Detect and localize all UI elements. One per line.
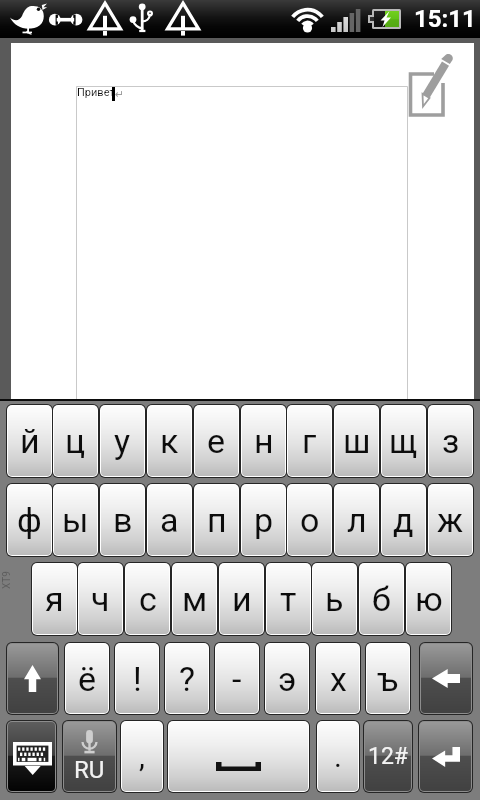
staticText: . xyxy=(334,739,342,774)
button[interactable]: й xyxy=(8,406,51,476)
staticText: ь xyxy=(325,579,344,619)
staticText: ц xyxy=(65,421,86,461)
staticText: я xyxy=(45,579,64,619)
button[interactable]: - xyxy=(216,644,258,713)
button[interactable]: ж xyxy=(429,485,472,555)
button[interactable]: л xyxy=(335,485,378,555)
button[interactable]: Space xyxy=(169,722,308,791)
staticText: к xyxy=(160,421,179,461)
staticText: р xyxy=(254,500,274,540)
button[interactable]: ё xyxy=(66,644,108,713)
button[interactable]: . xyxy=(318,722,358,791)
button[interactable]: ! xyxy=(116,644,158,713)
staticText: ч xyxy=(91,579,110,619)
button[interactable]: Shift xyxy=(8,644,57,713)
button[interactable]: ю xyxy=(407,564,450,634)
button[interactable]: ф xyxy=(8,485,51,555)
staticText: х xyxy=(330,659,347,699)
button[interactable]: в xyxy=(101,485,144,555)
staticText: н xyxy=(254,421,274,461)
button[interactable]: 12# xyxy=(365,722,411,791)
staticText: ш xyxy=(343,421,371,461)
staticText: л xyxy=(347,500,367,540)
staticText: о xyxy=(300,500,320,540)
button[interactable]: м xyxy=(173,564,216,634)
staticText: RU xyxy=(74,756,105,784)
button[interactable]: и xyxy=(220,564,263,634)
button[interactable]: е xyxy=(195,406,238,476)
staticText: ъ xyxy=(377,659,399,699)
staticText: с xyxy=(139,579,157,619)
staticText: щ xyxy=(389,421,418,461)
staticText: ё xyxy=(78,659,97,699)
staticText: XT9 xyxy=(1,571,13,589)
button[interactable]: а xyxy=(148,485,191,555)
staticText: т xyxy=(280,579,297,619)
staticText: ? xyxy=(179,659,196,699)
button[interactable]: п xyxy=(195,485,238,555)
staticText: ж xyxy=(437,500,464,540)
staticText: д xyxy=(393,500,414,540)
staticText: б xyxy=(372,579,391,619)
staticText: е xyxy=(207,421,226,461)
button[interactable]: Edit note xyxy=(404,53,460,119)
button[interactable]: к xyxy=(148,406,191,476)
staticText: у xyxy=(114,421,131,461)
button[interactable]: Hide keyboard xyxy=(8,722,55,791)
staticText: а xyxy=(160,500,179,540)
staticText: ю xyxy=(415,579,443,619)
button[interactable]: с xyxy=(126,564,169,634)
staticText: , xyxy=(139,739,145,774)
button[interactable]: н xyxy=(242,406,285,476)
staticText: й xyxy=(20,421,40,461)
staticText: 12# xyxy=(368,743,409,770)
button[interactable]: я xyxy=(33,564,76,634)
staticText: ↵ xyxy=(115,88,125,101)
staticText: 15:11 xyxy=(414,5,476,33)
staticText: э xyxy=(278,659,297,699)
staticText: и xyxy=(232,579,252,619)
button[interactable]: д xyxy=(382,485,425,555)
staticText: г xyxy=(302,421,317,461)
staticText: м xyxy=(182,579,208,619)
staticText: ы xyxy=(62,500,89,540)
button[interactable]: Enter xyxy=(420,722,471,791)
staticText: ф xyxy=(17,500,42,540)
button[interactable]: т xyxy=(267,564,310,634)
button[interactable]: ц xyxy=(54,406,97,476)
button[interactable]: ъ xyxy=(367,644,409,713)
button[interactable]: з xyxy=(429,406,472,476)
button[interactable]: ш xyxy=(335,406,378,476)
staticText: з xyxy=(442,421,460,461)
button[interactable]: ы xyxy=(54,485,97,555)
staticText: п xyxy=(207,500,227,540)
button[interactable]: ? xyxy=(166,644,208,713)
button[interactable]: ь xyxy=(313,564,356,634)
button[interactable]: э xyxy=(266,644,308,713)
button[interactable]: Voice input, RU xyxy=(64,722,115,791)
button[interactable]: б xyxy=(360,564,403,634)
staticText: ! xyxy=(133,659,142,699)
staticText: Привет xyxy=(77,86,115,99)
button[interactable]: х xyxy=(317,644,359,713)
button[interactable]: , xyxy=(122,722,162,791)
staticText: - xyxy=(232,659,242,699)
button[interactable]: о xyxy=(288,485,331,555)
button[interactable]: Backspace xyxy=(421,644,471,713)
button[interactable]: у xyxy=(101,406,144,476)
button[interactable]: щ xyxy=(382,406,425,476)
button[interactable]: ч xyxy=(79,564,122,634)
button[interactable]: г xyxy=(288,406,331,476)
button[interactable]: р xyxy=(242,485,285,555)
staticText: в xyxy=(113,500,133,540)
